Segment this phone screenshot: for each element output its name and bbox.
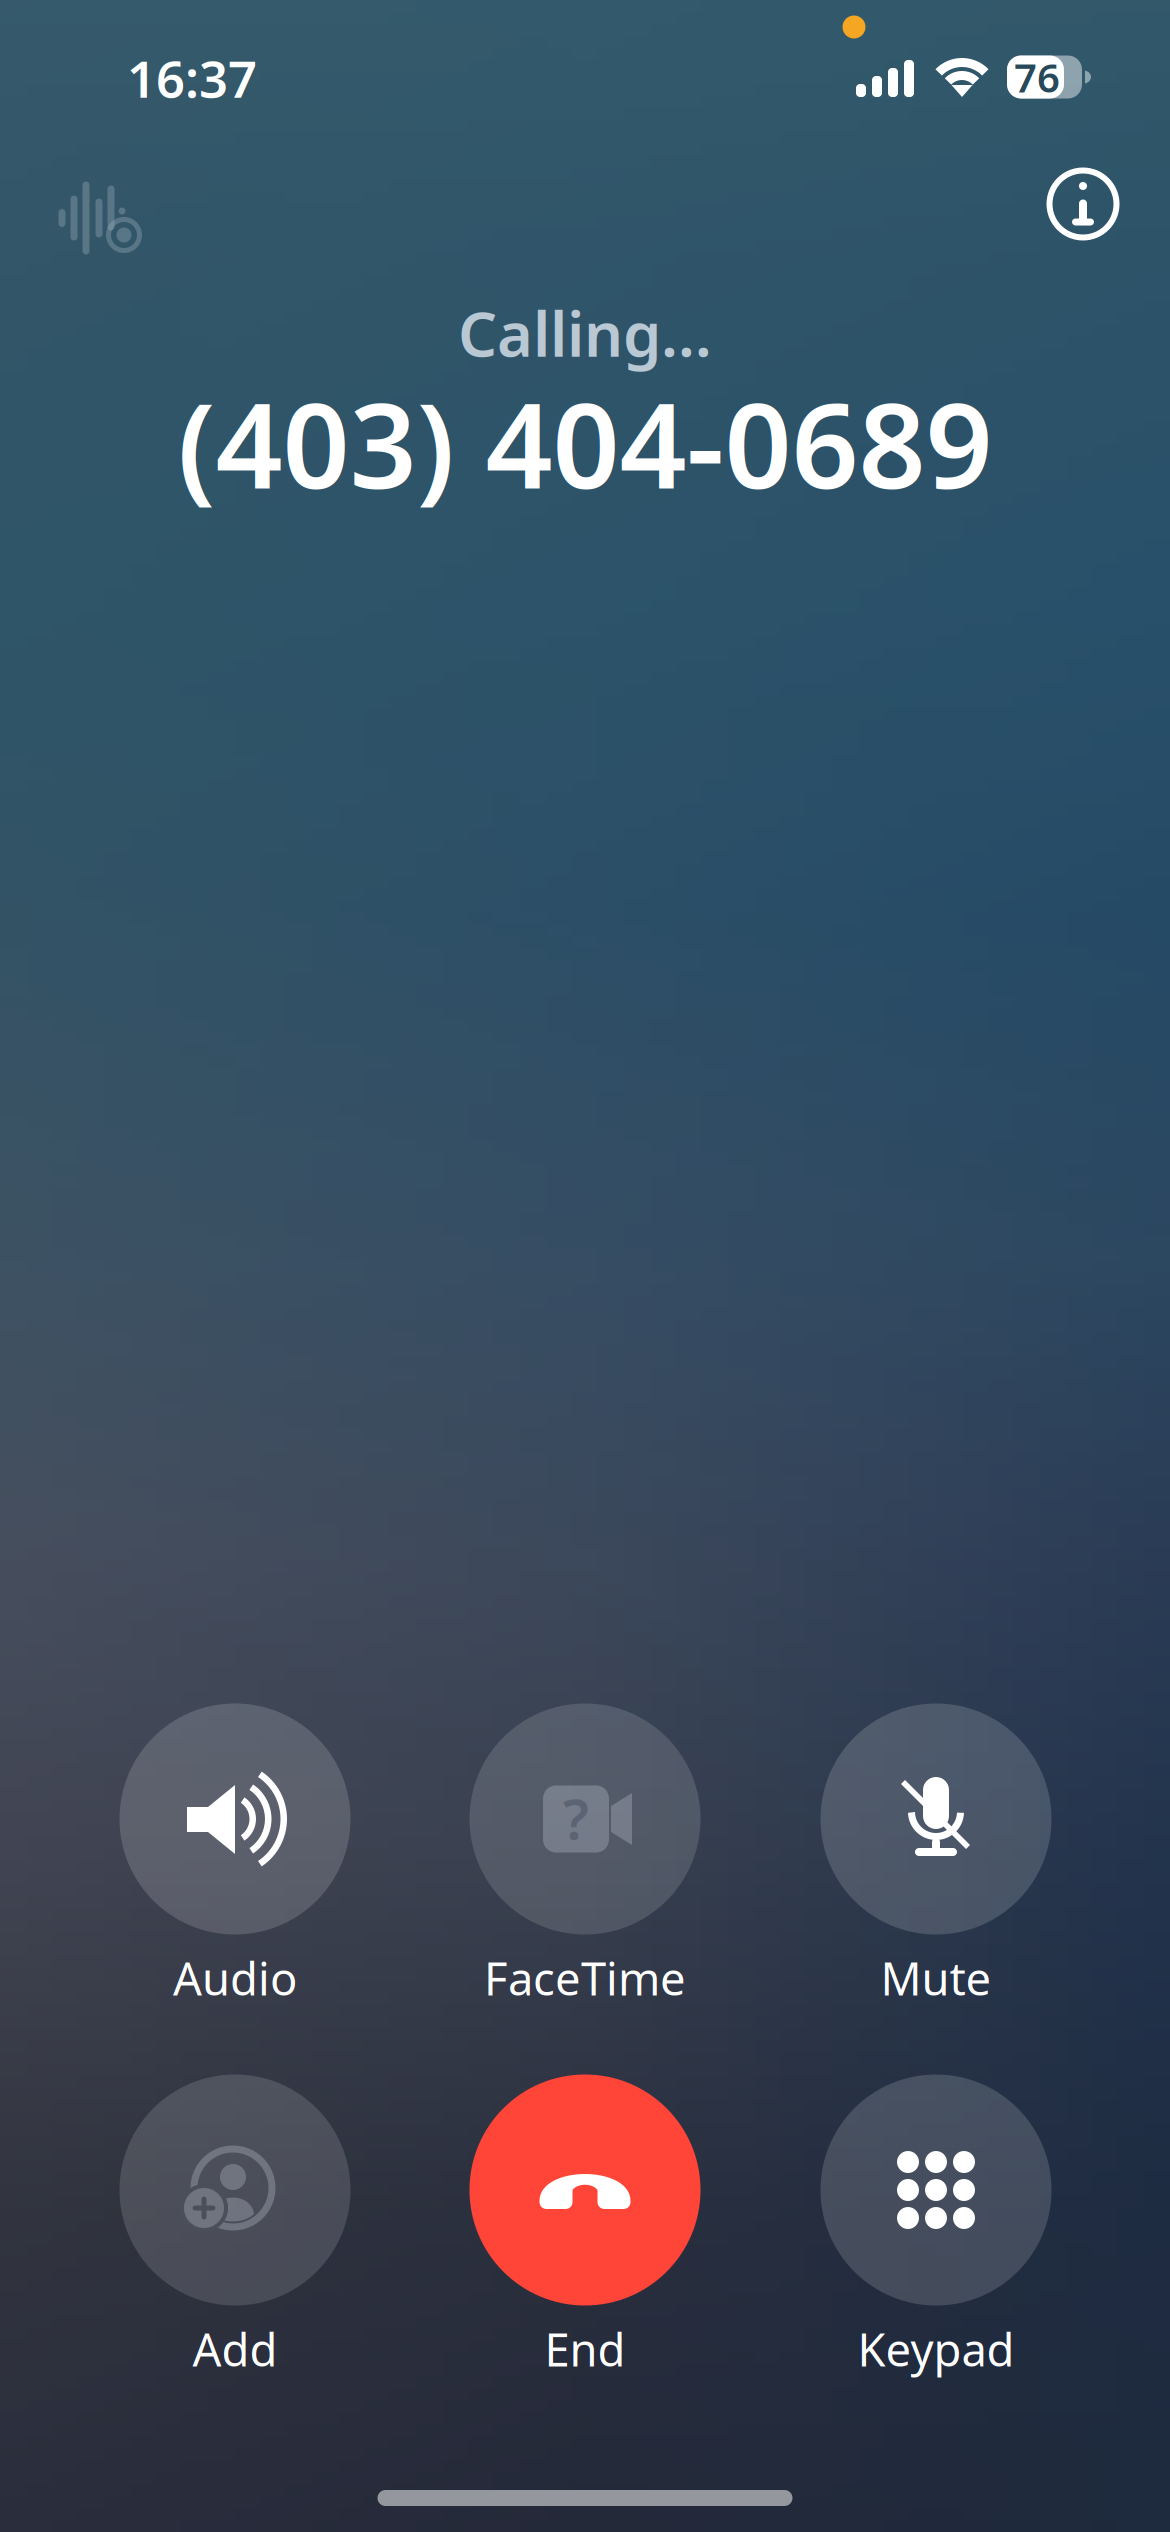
button[interactable]: Call details (1029, 150, 1137, 258)
staticText: Calling… (458, 292, 712, 374)
staticText: End (544, 2319, 625, 2379)
staticText: FaceTime (484, 1948, 686, 2008)
button[interactable]: Add (0, 0, 1170, 2532)
button[interactable]: Mute (0, 0, 1170, 2532)
button[interactable]: End (0, 0, 1170, 2532)
staticText: (403) 404-0689 (177, 365, 992, 521)
staticText: Mute (880, 1948, 991, 2008)
button[interactable]: Keypad (0, 0, 1170, 2532)
staticText: Audio (173, 1948, 297, 2008)
staticText: 16:37 (127, 44, 257, 112)
button[interactable]: Audio (0, 0, 1170, 2532)
button[interactable]: ? (0, 0, 1170, 2532)
staticText: Add (192, 2319, 277, 2379)
staticText: 76 (1014, 50, 1060, 103)
staticText: Keypad (857, 2319, 1014, 2379)
staticText: ? (563, 1781, 589, 1855)
